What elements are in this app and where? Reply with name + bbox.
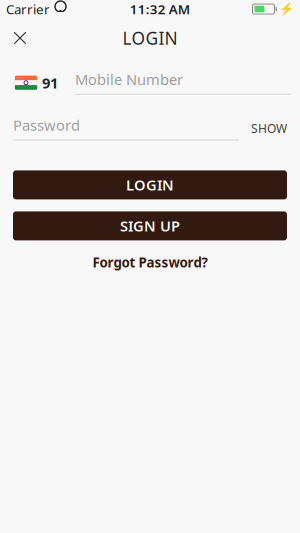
button[interactable]: SIGN UP <box>13 211 287 240</box>
staticText: Carrier <box>6 0 50 18</box>
staticText: LOGIN <box>122 26 177 49</box>
staticText: ⚡ <box>279 2 294 16</box>
button[interactable]: SHOW <box>245 115 293 141</box>
button[interactable]: Forgot Password? <box>82 249 217 275</box>
staticText: Forgot Password? <box>92 253 207 271</box>
button[interactable]: 91 <box>15 69 58 96</box>
staticText: 11:32 AM <box>130 0 190 18</box>
staticText: 91 <box>42 73 58 92</box>
staticText: LOGIN <box>126 175 174 195</box>
staticText: SIGN UP <box>120 216 180 236</box>
staticText: Password <box>13 115 80 135</box>
staticText: SHOW <box>251 120 287 136</box>
button[interactable]: LOGIN <box>13 170 287 199</box>
button[interactable]: Close <box>3 23 37 53</box>
staticText: Mobile Number <box>75 69 183 89</box>
